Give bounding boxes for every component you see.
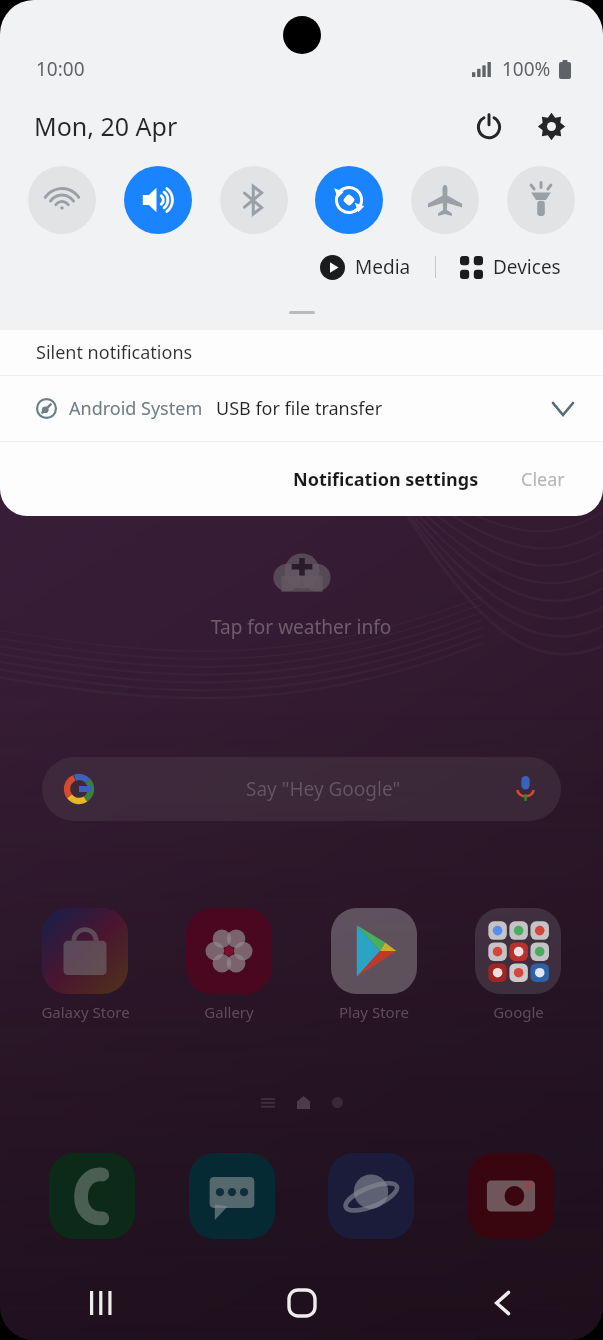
staticText: Play Store bbox=[339, 1002, 409, 1022]
button[interactable]: Sound bbox=[124, 166, 192, 234]
other: Google bbox=[64, 774, 94, 804]
button[interactable]: Internet bbox=[323, 1148, 419, 1244]
button[interactable]: Devices bbox=[454, 250, 567, 284]
staticText: Say "Hey Google" bbox=[246, 776, 401, 802]
button[interactable]: Wi-Fi bbox=[28, 166, 96, 234]
staticText: Tap for weather info bbox=[211, 614, 392, 640]
button[interactable]: Home bbox=[201, 1266, 402, 1340]
staticText: Media bbox=[355, 254, 411, 280]
other: Voice search bbox=[516, 776, 535, 802]
button[interactable]: Flashlight bbox=[507, 166, 575, 234]
staticText: Galaxy Store bbox=[41, 1002, 130, 1022]
other: Expand bbox=[553, 403, 573, 415]
button[interactable]: Media bbox=[314, 250, 417, 284]
button[interactable]: Auto rotate bbox=[315, 166, 383, 234]
button[interactable]: Airplane mode bbox=[411, 166, 479, 234]
button[interactable]: Silent notifications bbox=[0, 330, 603, 375]
button[interactable]: Android System bbox=[0, 376, 603, 441]
staticText: Notification settings bbox=[293, 467, 479, 492]
button[interactable]: Recents bbox=[0, 1266, 201, 1340]
button[interactable]: Clear bbox=[513, 461, 573, 498]
button[interactable]: Galaxy Store bbox=[26, 908, 144, 1022]
button[interactable]: Google bbox=[42, 757, 561, 821]
button[interactable]: Bluetooth bbox=[220, 166, 288, 234]
button[interactable]: Settings bbox=[525, 100, 577, 152]
staticText: Mon, 20 Apr bbox=[34, 109, 178, 143]
button[interactable]: Camera bbox=[463, 1148, 559, 1244]
staticText: Android System bbox=[69, 396, 203, 421]
staticText: Silent notifications bbox=[36, 340, 193, 365]
staticText: 100% bbox=[502, 56, 551, 82]
staticText: Google bbox=[493, 1002, 544, 1022]
button[interactable]: Notification settings bbox=[285, 461, 487, 498]
button[interactable]: Messages bbox=[184, 1148, 280, 1244]
button[interactable]: Power bbox=[463, 100, 515, 152]
staticText: Gallery bbox=[204, 1002, 254, 1022]
staticText: 10:00 bbox=[36, 56, 85, 82]
staticText: Devices bbox=[493, 254, 561, 280]
button[interactable]: Gallery bbox=[170, 908, 288, 1022]
button[interactable]: Google bbox=[459, 908, 577, 1022]
staticText: Clear bbox=[521, 467, 565, 492]
button[interactable]: Back bbox=[402, 1266, 603, 1340]
staticText: USB for file transfer bbox=[216, 396, 383, 421]
button[interactable]: Phone bbox=[44, 1148, 140, 1244]
button[interactable]: Play Store bbox=[315, 908, 433, 1022]
